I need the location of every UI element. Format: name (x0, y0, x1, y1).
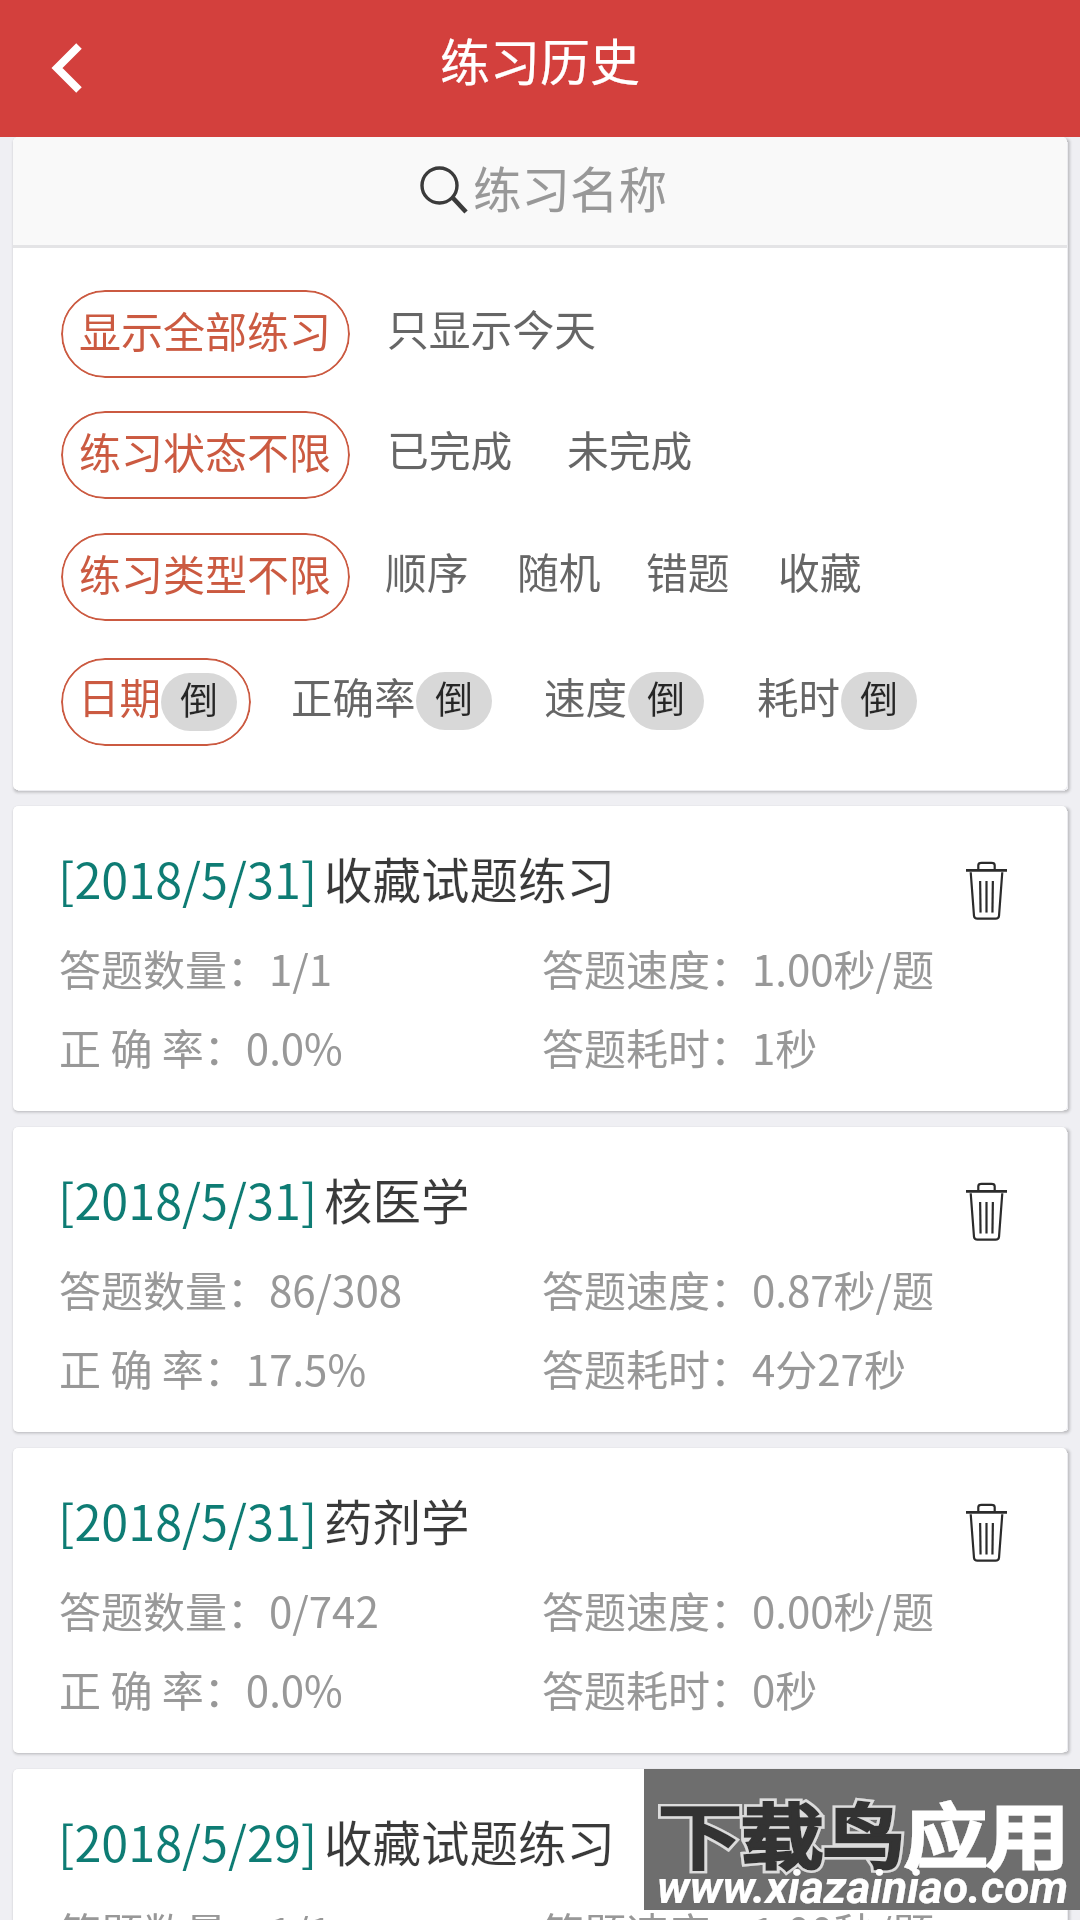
staticText: 答题数量：1/1 (59, 937, 333, 998)
button[interactable]: 已完成 (389, 411, 515, 499)
button[interactable]: 收藏 (780, 533, 864, 621)
staticText: 下载鸟 (659, 1781, 906, 1883)
button[interactable]: Delete (950, 1817, 1022, 1889)
staticText: 练习历史 (440, 23, 640, 95)
button[interactable]: 练习状态不限 (61, 411, 350, 499)
button[interactable]: 随机 (519, 533, 603, 621)
staticText: 错题 (646, 541, 730, 602)
staticText: [2018/5/29] (58, 1806, 318, 1876)
button[interactable]: 显示全部练习 (61, 290, 350, 378)
staticText: 练习类型不限 (79, 542, 332, 603)
button[interactable]: [2018/5/31] (13, 1127, 1067, 1432)
staticText: 正 确 率：0.0% (59, 1016, 343, 1077)
staticText: 答题耗时：4分27秒 (542, 1337, 906, 1398)
button[interactable]: 日期 (61, 658, 251, 746)
button[interactable]: 顺序 (387, 533, 471, 621)
staticText: 日期 (78, 666, 162, 726)
staticText: 倒 (180, 673, 219, 725)
button[interactable]: [2018/5/29] (13, 1769, 1067, 1920)
staticText: [2018/5/31] (58, 1485, 318, 1555)
button[interactable]: 练习类型不限 (61, 533, 350, 621)
staticText: 答题耗时：1秒 (542, 1016, 818, 1077)
button[interactable]: Delete (950, 1175, 1022, 1247)
staticText: 下载鸟 (659, 1781, 906, 1883)
staticText: 练习名称 (473, 152, 668, 222)
staticText: 练习状态不限 (79, 420, 332, 481)
staticText: 答题速度：1.00秒/题 (542, 937, 935, 998)
staticText: 答题数量：86/308 (59, 1258, 403, 1319)
staticText: 倒 (860, 672, 899, 724)
staticText: 顺序 (385, 541, 469, 602)
staticText: 收藏试题练习 (324, 843, 616, 913)
button[interactable]: Delete (950, 854, 1022, 926)
staticText: www.xiazainiao.com (657, 1860, 1069, 1914)
button[interactable]: 耗时 (757, 658, 917, 746)
staticText: 正确率 (291, 666, 416, 726)
staticText: 显示全部练习 (79, 299, 332, 360)
staticText: 答题数量：1/1 (59, 1900, 333, 1920)
button[interactable]: 正确率 (291, 658, 492, 746)
staticText: 倒 (435, 672, 474, 724)
button[interactable]: Delete (950, 1496, 1022, 1568)
staticText: 答题速度：0.00秒/题 (542, 1579, 935, 1640)
staticText: 核医学 (324, 1164, 470, 1234)
staticText: 随机 (517, 541, 601, 602)
button[interactable]: 错题 (648, 533, 732, 621)
button[interactable]: 练习名称 (13, 137, 1067, 245)
staticText: 答题数量：0/742 (59, 1579, 379, 1640)
staticText: 药剂学 (324, 1485, 470, 1555)
staticText: 应用 (905, 1781, 1070, 1883)
staticText: 未完成 (567, 419, 693, 480)
staticText: 收藏 (778, 541, 862, 602)
staticText: 答题速度：1.00秒/题 (542, 1900, 935, 1920)
staticText: 答题速度：0.87秒/题 (542, 1258, 935, 1319)
staticText: 只显示今天 (387, 298, 596, 359)
staticText: 正 确 率：0.0% (59, 1658, 343, 1719)
staticText: 正 确 率：17.5% (59, 1337, 367, 1398)
staticText: 答题耗时：0秒 (542, 1658, 818, 1719)
staticText: 下载鸟 (659, 1781, 906, 1883)
button[interactable]: 未完成 (569, 411, 695, 499)
staticText: 已完成 (387, 419, 513, 480)
button[interactable]: Back (20, 22, 112, 114)
staticText: [2018/5/31] (58, 843, 318, 913)
button[interactable]: [2018/5/31] (13, 1448, 1067, 1753)
staticText: 耗时 (757, 666, 841, 726)
staticText: 倒 (647, 672, 686, 724)
staticText: 收藏试题练习 (324, 1806, 616, 1876)
staticText: 速度 (544, 666, 628, 726)
button[interactable]: [2018/5/31] (13, 806, 1067, 1111)
staticText: 应用 (905, 1781, 1070, 1883)
staticText: [2018/5/31] (58, 1164, 318, 1234)
button[interactable]: 只显示今天 (389, 290, 598, 378)
button[interactable]: 速度 (544, 658, 704, 746)
